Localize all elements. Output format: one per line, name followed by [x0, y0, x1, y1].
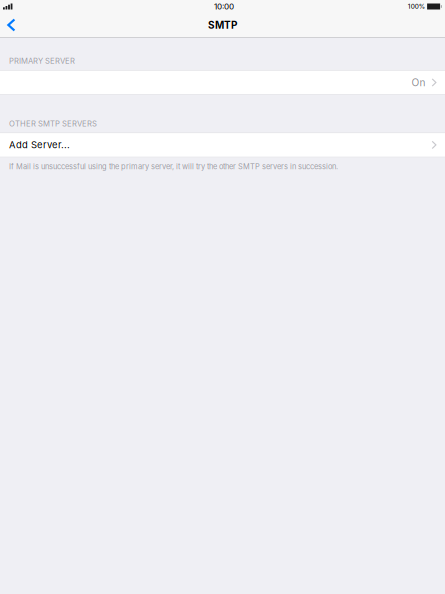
staticText: 100%: [408, 3, 425, 10]
staticText: PRIMARY SERVER: [9, 56, 75, 66]
staticText: Add Server...: [9, 139, 70, 151]
staticText: If Mail is unsuccessful using the primar…: [9, 162, 338, 171]
button[interactable]: Add Server...: [0, 132, 445, 158]
staticText: SMTP: [208, 19, 237, 31]
staticText: On: [412, 76, 426, 89]
button[interactable]: Back: [0, 13, 26, 37]
button[interactable]: On: [0, 70, 445, 95]
staticText: 10:00: [214, 2, 234, 11]
staticText: OTHER SMTP SERVERS: [9, 119, 97, 128]
